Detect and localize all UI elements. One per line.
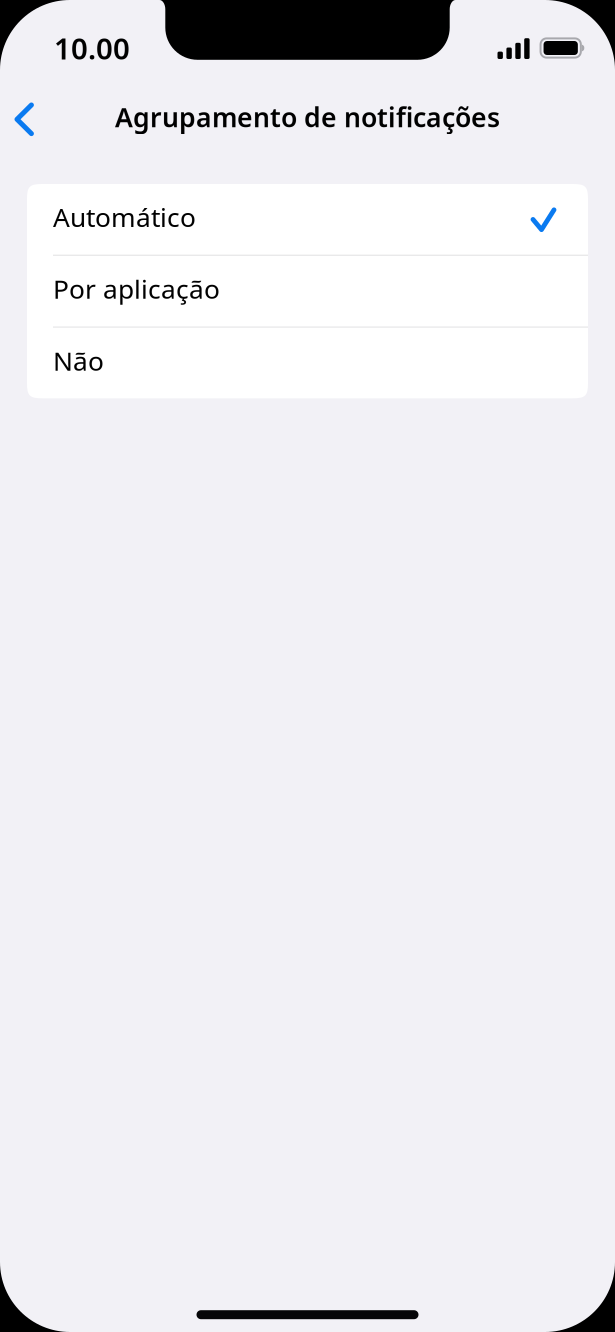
button[interactable]: Back <box>0 92 58 145</box>
button[interactable]: Automático <box>27 184 588 255</box>
staticText: Não <box>53 343 104 378</box>
button[interactable]: Por aplicação <box>27 256 588 326</box>
staticText: Agrupamento de notificações <box>115 99 500 135</box>
staticText: Por aplicação <box>53 271 220 306</box>
button[interactable]: Não <box>27 328 588 398</box>
staticText: Automático <box>53 199 196 234</box>
staticText: 10.00 <box>54 28 130 67</box>
